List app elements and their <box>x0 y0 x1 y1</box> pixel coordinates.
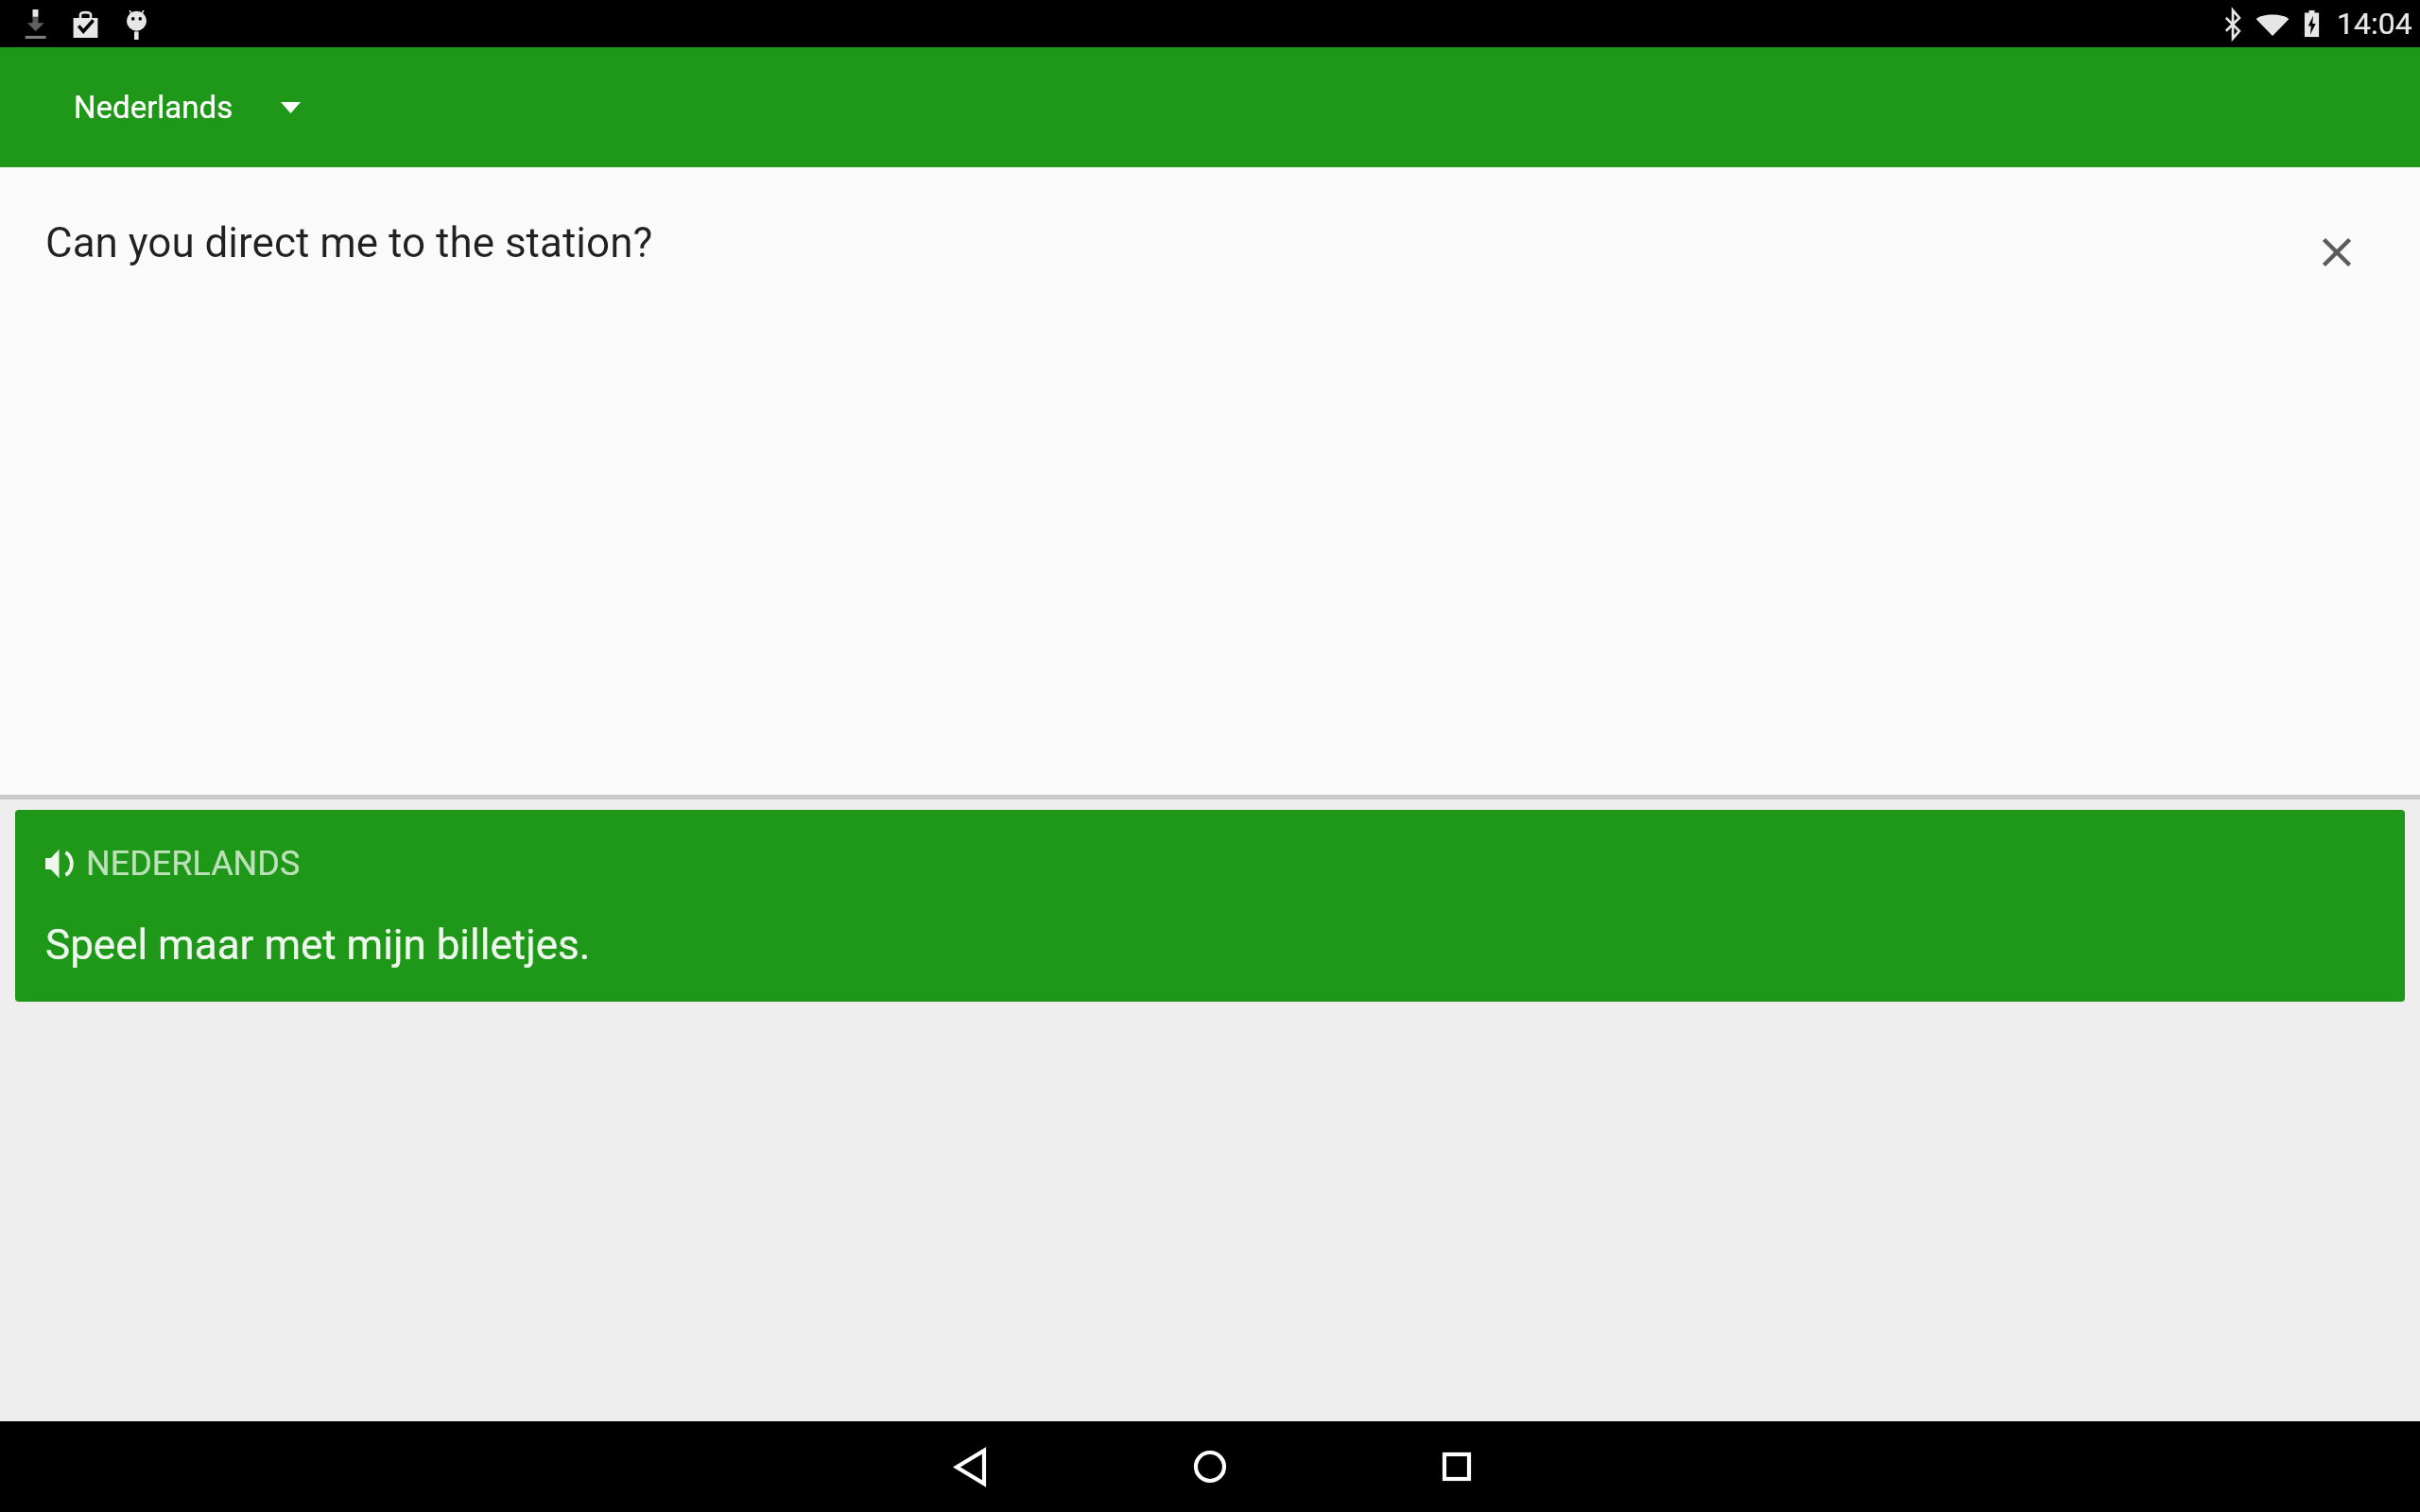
button[interactable]: Recent apps <box>1411 1421 1502 1512</box>
button[interactable]: Home <box>1165 1421 1255 1512</box>
button[interactable]: Back <box>918 1421 1009 1512</box>
staticText: Can you direct me to the station? <box>45 218 653 267</box>
staticText: NEDERLANDS <box>86 844 301 884</box>
staticText: Speel maar met mijn billetjes. <box>45 920 591 970</box>
button[interactable]: Play Dutch translation <box>15 810 2405 1002</box>
button[interactable]: Nederlands <box>74 89 301 126</box>
staticText: 14:04 <box>2337 6 2412 42</box>
staticText: Nederlands <box>74 89 233 126</box>
button[interactable]: Clear text <box>2306 221 2368 283</box>
